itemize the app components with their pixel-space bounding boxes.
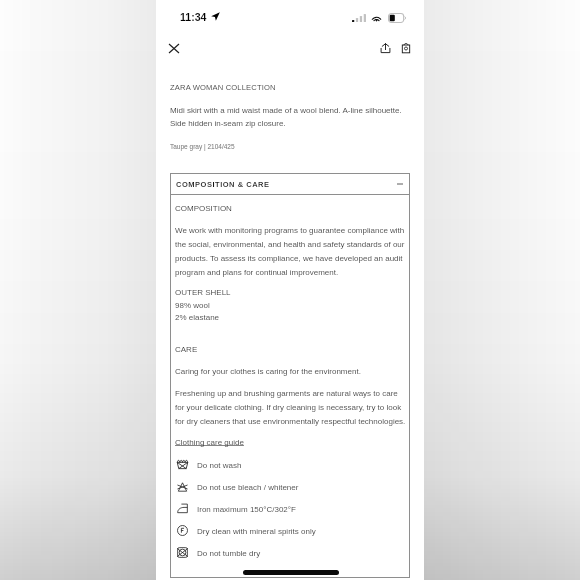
button[interactable]: Close [160, 34, 188, 62]
button[interactable]: Do not use bleach / whitener [175, 476, 408, 498]
staticText: 98% wool [175, 301, 210, 310]
staticText: OUTER SHELL [175, 288, 231, 297]
staticText: Iron maximum 150°C/302°F [197, 505, 296, 514]
button[interactable]: Clothing care guide [175, 438, 244, 447]
staticText: Caring for your clothes is caring for th… [175, 367, 361, 376]
staticText: 11:34 [180, 11, 207, 23]
staticText: Midi skirt with a mid waist made of a wo… [170, 106, 410, 127]
button[interactable]: Do not tumble dry [175, 542, 408, 564]
button[interactable]: Do not wash [175, 454, 408, 476]
staticText: ZARA WOMAN COLLECTION [170, 83, 276, 91]
staticText: Dry clean with mineral spirits only [197, 527, 316, 536]
staticText: Freshening up and brushing garments are … [175, 389, 408, 426]
staticText: 2% elastane [175, 313, 220, 322]
button[interactable]: COMPOSITION & CARE [170, 173, 410, 194]
staticText: Do not tumble dry [197, 549, 261, 558]
staticText: COMPOSITION & CARE [176, 180, 270, 188]
staticText: COMPOSITION [175, 204, 232, 213]
button[interactable]: Share [371, 34, 399, 62]
button[interactable]: Dry clean with mineral spirits only [175, 520, 408, 542]
staticText: Do not use bleach / whitener [197, 483, 299, 492]
button[interactable]: Shopping bag [392, 34, 420, 62]
staticText: CARE [175, 345, 198, 354]
staticText: Taupe gray | 2104/425 [170, 143, 235, 150]
button[interactable]: Iron maximum 150°C/302°F [175, 498, 408, 520]
staticText: Do not wash [197, 461, 242, 470]
staticText: We work with monitoring programs to guar… [175, 226, 408, 277]
